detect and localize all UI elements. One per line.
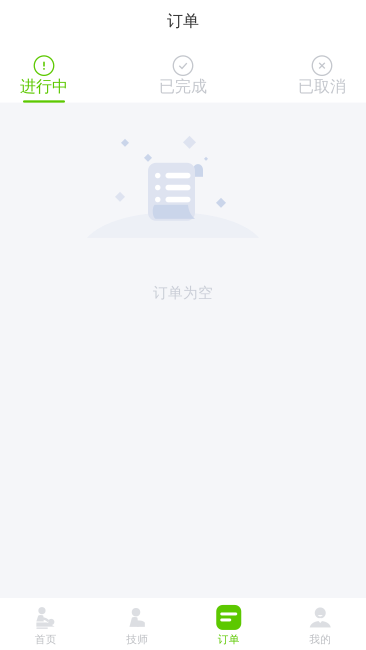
button[interactable]: 首页 <box>0 597 91 650</box>
staticText: 进行中 <box>20 77 68 96</box>
staticText: 已完成 <box>159 77 207 96</box>
staticText: 订单 <box>167 11 199 31</box>
staticText: 技师 <box>126 633 148 646</box>
button[interactable]: 已取消 <box>290 56 354 103</box>
staticText: 订单 <box>218 633 240 646</box>
staticText: 已取消 <box>298 77 346 96</box>
staticText: 首页 <box>35 633 57 646</box>
button[interactable]: 技师 <box>91 597 183 650</box>
staticText: 我的 <box>309 633 331 646</box>
button[interactable]: 我的 <box>274 597 366 650</box>
staticText: 订单为空 <box>153 284 213 302</box>
button[interactable]: 订单 <box>183 597 274 650</box>
button[interactable]: 进行中 <box>12 56 76 103</box>
button[interactable]: 已完成 <box>151 56 215 103</box>
